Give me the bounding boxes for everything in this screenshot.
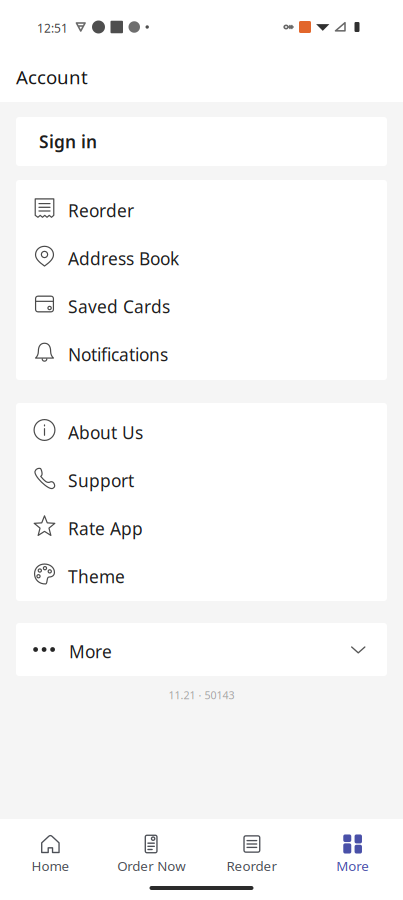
staticText: 11.21 · 50143: [168, 688, 234, 702]
button[interactable]: Home: [0, 819, 101, 886]
button[interactable]: Theme: [16, 550, 387, 598]
button[interactable]: Rate App: [16, 502, 387, 550]
staticText: About Us: [68, 421, 143, 444]
button[interactable]: Address Book: [16, 232, 387, 280]
staticText: Reorder: [68, 199, 134, 222]
button[interactable]: Support: [16, 454, 387, 502]
staticText: Address Book: [68, 247, 179, 270]
staticText: Support: [68, 469, 134, 492]
button[interactable]: Saved Cards: [16, 280, 387, 328]
button[interactable]: Sign in: [16, 117, 387, 166]
staticText: Notifications: [68, 343, 168, 366]
button[interactable]: Notifications: [16, 328, 387, 376]
staticText: More: [336, 857, 369, 875]
staticText: Order Now: [117, 857, 185, 875]
staticText: Sign in: [39, 130, 97, 153]
button[interactable]: More: [16, 623, 387, 676]
staticText: Saved Cards: [68, 295, 170, 318]
staticText: More: [69, 640, 112, 663]
button[interactable]: More: [302, 819, 403, 886]
button[interactable]: Reorder: [16, 184, 387, 232]
staticText: Home: [31, 857, 69, 875]
button[interactable]: Reorder: [201, 819, 302, 886]
button[interactable]: About Us: [16, 406, 387, 454]
button[interactable]: Order Now: [101, 819, 202, 886]
staticText: Account: [16, 65, 88, 89]
staticText: 12:51: [37, 20, 68, 36]
staticText: Reorder: [226, 857, 277, 875]
staticText: Theme: [68, 565, 125, 588]
staticText: Rate App: [68, 517, 143, 540]
